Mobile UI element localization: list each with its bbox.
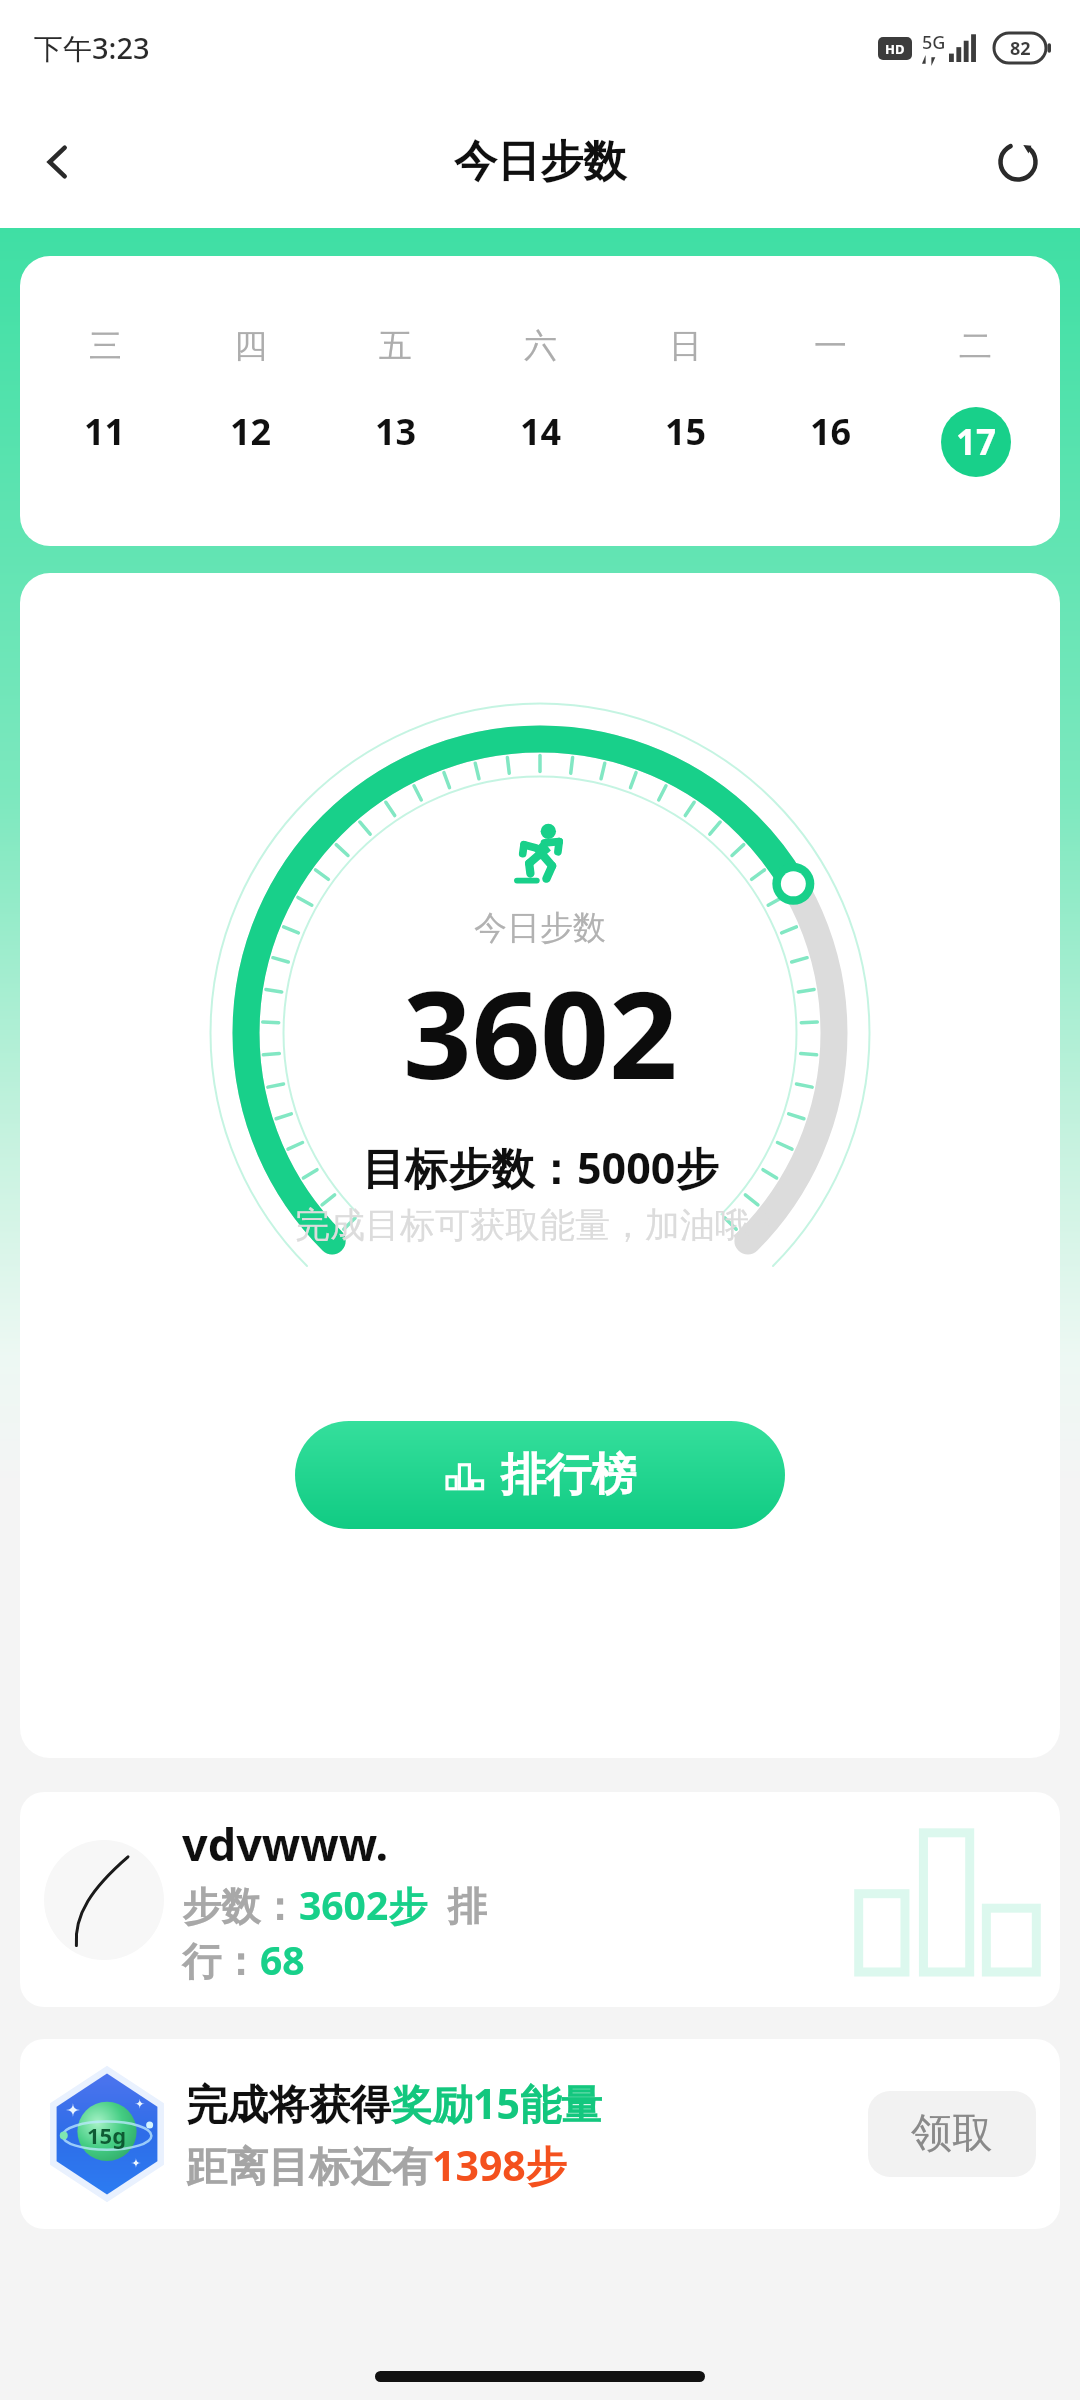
staticText: 排行榜 xyxy=(501,1447,636,1504)
staticText: 下午3:23 xyxy=(34,28,150,68)
staticText: 5G xyxy=(922,30,946,55)
staticText: 五 xyxy=(379,325,412,367)
staticText: 16 xyxy=(810,407,852,456)
staticText: 步数：3602步 排行：68 xyxy=(182,1878,557,1986)
staticText: 领取 xyxy=(911,2108,993,2160)
staticText: 三 xyxy=(89,325,122,367)
staticText: 完成将获得奖励15能量 xyxy=(186,2075,602,2131)
button[interactable]: 排行榜 xyxy=(295,1421,785,1529)
staticText: 12 xyxy=(230,407,272,456)
button[interactable]: 领取 xyxy=(868,2091,1036,2177)
staticText: 14 xyxy=(520,407,562,456)
staticText: 11 xyxy=(84,407,126,456)
button[interactable]: 三 xyxy=(20,256,1060,546)
staticText: 目标步数：5000步 xyxy=(362,1138,719,1197)
staticText: 日 xyxy=(669,325,702,367)
staticText: 13 xyxy=(375,407,417,456)
staticText: 距离目标还有1398步 xyxy=(186,2137,567,2193)
button[interactable]: vdvwww. xyxy=(20,1792,1060,2007)
staticText: 15 xyxy=(665,407,707,456)
staticText: 四 xyxy=(234,325,267,367)
button[interactable]: Back xyxy=(16,120,100,204)
staticText: 17 xyxy=(956,418,997,466)
staticText: vdvwww. xyxy=(182,1813,389,1874)
staticText: 3602 xyxy=(403,951,678,1114)
staticText: 六 xyxy=(524,325,557,367)
staticText: 完成目标可获取能量，加油哦！ xyxy=(295,1203,785,1247)
staticText: 今日步数 xyxy=(474,907,606,949)
staticText: 82 xyxy=(1010,36,1031,61)
staticText: 一 xyxy=(814,325,847,367)
staticText: 二 xyxy=(959,325,992,367)
staticText: HD xyxy=(885,40,905,58)
staticText: 15g xyxy=(87,2120,127,2150)
button[interactable]: 17 xyxy=(941,407,1011,477)
button[interactable]: Refresh xyxy=(976,120,1060,204)
staticText: 今日步数 xyxy=(454,135,626,189)
